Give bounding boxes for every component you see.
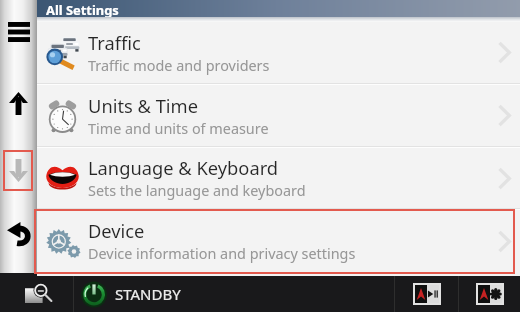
- button[interactable]: Scroll down: [3, 150, 33, 191]
- button[interactable]: Device: [37, 210, 520, 272]
- staticText: Sets the language and keyboard: [88, 181, 306, 201]
- staticText: STANDBY: [115, 284, 181, 304]
- button[interactable]: Scroll up: [3, 86, 34, 120]
- staticText: All Settings: [46, 1, 119, 18]
- button[interactable]: Traffic: [37, 22, 520, 83]
- button[interactable]: Media player app: [395, 276, 458, 312]
- staticText: Language & Keyboard: [88, 155, 279, 180]
- staticText: Device: [88, 218, 145, 243]
- button[interactable]: Language & Keyboard: [37, 148, 520, 208]
- button[interactable]: STANDBY: [74, 276, 394, 312]
- staticText: Units & Time: [88, 93, 199, 118]
- staticText: Traffic mode and providers: [88, 56, 270, 76]
- button[interactable]: Zoom out: [0, 276, 73, 312]
- button[interactable]: Second app: [459, 276, 520, 312]
- button[interactable]: Units & Time: [37, 85, 520, 146]
- staticText: Time and units of measure: [88, 119, 269, 139]
- staticText: Device information and privacy settings: [88, 244, 356, 264]
- button[interactable]: Back: [3, 216, 34, 250]
- staticText: Traffic: [88, 30, 141, 55]
- button[interactable]: Menu: [3, 16, 34, 48]
